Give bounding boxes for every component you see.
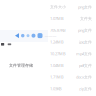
staticText: 1.03KB — [50, 86, 62, 91]
staticText: png文件 — [78, 28, 92, 33]
button[interactable]: 1.03KB — [50, 83, 92, 95]
button[interactable]: Rewind — [21, 34, 24, 37]
staticText: mp4文件 — [76, 51, 92, 56]
staticText: 1.04MB — [50, 63, 64, 68]
staticText: 文件管理存储 — [9, 63, 33, 68]
button[interactable]: Play — [26, 34, 29, 37]
staticText: 10.27MB — [50, 51, 66, 56]
staticText: docx文件 — [76, 74, 92, 80]
staticText: ——— — [44, 33, 56, 38]
staticText: 文件大小 — [50, 4, 66, 9]
staticText: 1.07MB — [50, 16, 64, 21]
staticText: jpg文件 — [79, 39, 92, 45]
button[interactable]: Forward — [31, 34, 35, 38]
button[interactable]: 1.04MB — [50, 59, 92, 71]
staticText: 文件夹 — [80, 16, 92, 21]
staticText: 1.24MB — [50, 39, 64, 45]
button[interactable]: 文件大小 — [50, 1, 92, 13]
button[interactable]: 1.24MB — [50, 36, 92, 48]
button[interactable]: Back — [15, 33, 19, 38]
staticText: zip文件 — [79, 86, 92, 91]
button[interactable]: 10.27MB — [50, 48, 92, 59]
staticText: png文件 — [78, 4, 92, 9]
button[interactable]: Open app — [37, 33, 42, 38]
button[interactable]: 705.87KB — [50, 24, 92, 36]
staticText: pdf文件 — [79, 63, 92, 68]
staticText: 705.87KB — [50, 28, 66, 33]
button[interactable]: 1.71MB — [50, 71, 92, 83]
button[interactable]: 1.07MB — [50, 13, 92, 24]
staticText: 1.71MB — [50, 74, 64, 80]
